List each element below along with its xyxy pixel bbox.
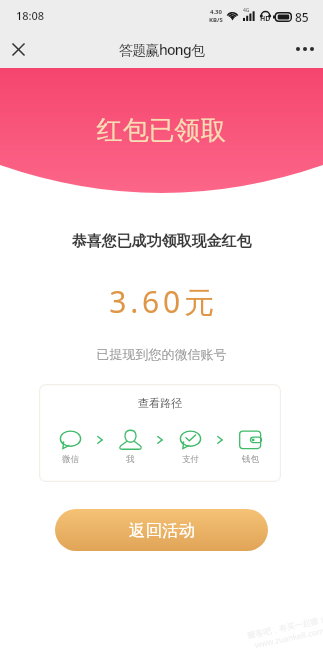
button[interactable]: Close xyxy=(0,31,36,67)
staticText: KB/S xyxy=(209,16,223,24)
staticText: 18:08 xyxy=(16,8,45,23)
staticText: HD xyxy=(260,14,271,24)
staticText: 返回活动 xyxy=(129,520,195,541)
staticText: 赚客吧，有买一起赚！ xyxy=(247,614,323,640)
staticText: 我 xyxy=(126,454,135,465)
staticText: 答题赢hong包 xyxy=(119,40,205,59)
staticText: 85 xyxy=(295,9,309,25)
staticText: 4.30 xyxy=(210,8,222,16)
staticText: 查看路径 xyxy=(138,396,182,410)
staticText: 4G xyxy=(243,7,250,14)
staticText: 支付 xyxy=(182,454,199,465)
button[interactable]: 返回活动 xyxy=(55,509,268,551)
staticText: 已提现到您的微信账号 xyxy=(0,346,323,362)
staticText: 微信 xyxy=(62,454,79,465)
staticText: 钱包 xyxy=(242,454,259,465)
staticText: 恭喜您已成功领取现金红包 xyxy=(0,232,323,251)
button[interactable]: 查看路径 xyxy=(39,384,281,482)
staticText: 红包已领取 xyxy=(0,114,323,147)
button[interactable]: More options xyxy=(287,31,323,67)
staticText: www.zuanke8.com xyxy=(254,624,323,650)
staticText: 3.60元 xyxy=(2,281,323,322)
